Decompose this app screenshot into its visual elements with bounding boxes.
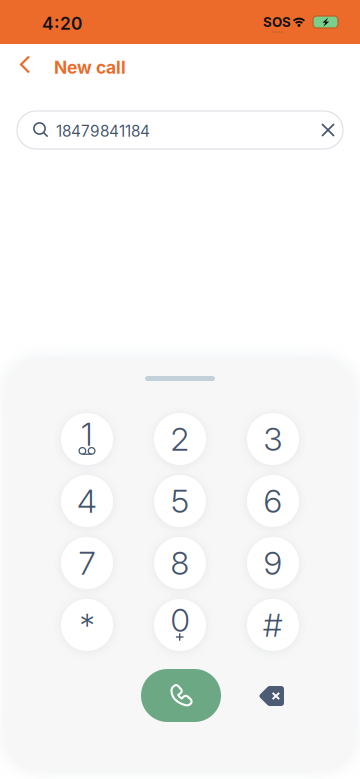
staticText: * xyxy=(79,606,94,644)
staticText: 7 xyxy=(78,544,95,582)
button[interactable]: Back xyxy=(8,47,42,82)
staticText: 3 xyxy=(263,420,282,458)
button[interactable]: 9 xyxy=(247,537,299,589)
button[interactable]: Clear xyxy=(312,114,344,146)
button[interactable]: 7 xyxy=(61,537,113,589)
staticText: 4:20 xyxy=(42,13,82,34)
button[interactable]: 5 xyxy=(154,475,206,527)
staticText: 6 xyxy=(263,482,282,520)
button[interactable]: 0 xyxy=(154,599,206,651)
staticText: 5 xyxy=(171,482,189,520)
staticText: 1 xyxy=(81,415,93,453)
button[interactable]: * xyxy=(61,599,113,651)
staticText: New call xyxy=(54,57,126,78)
staticText: 4 xyxy=(77,482,97,520)
staticText: 2 xyxy=(170,420,189,458)
button[interactable]: 4 xyxy=(61,475,113,527)
button[interactable]: 8 xyxy=(154,537,206,589)
button[interactable]: # xyxy=(247,599,299,651)
button[interactable]: Call xyxy=(141,669,221,722)
staticText: 0 xyxy=(170,601,189,639)
button[interactable]: 3 xyxy=(247,413,299,465)
staticText: SOS xyxy=(263,14,291,30)
staticText: # xyxy=(263,606,283,644)
button[interactable]: New call xyxy=(54,51,126,84)
button[interactable]: 1 xyxy=(61,413,113,465)
button[interactable]: 6 xyxy=(247,475,299,527)
staticText: •••• xyxy=(271,28,283,35)
button[interactable]: Delete xyxy=(259,686,284,706)
staticText: 9 xyxy=(263,544,282,582)
staticText: 18479841184 xyxy=(56,122,150,141)
staticText: 8 xyxy=(170,544,189,582)
button[interactable]: 2 xyxy=(154,413,206,465)
